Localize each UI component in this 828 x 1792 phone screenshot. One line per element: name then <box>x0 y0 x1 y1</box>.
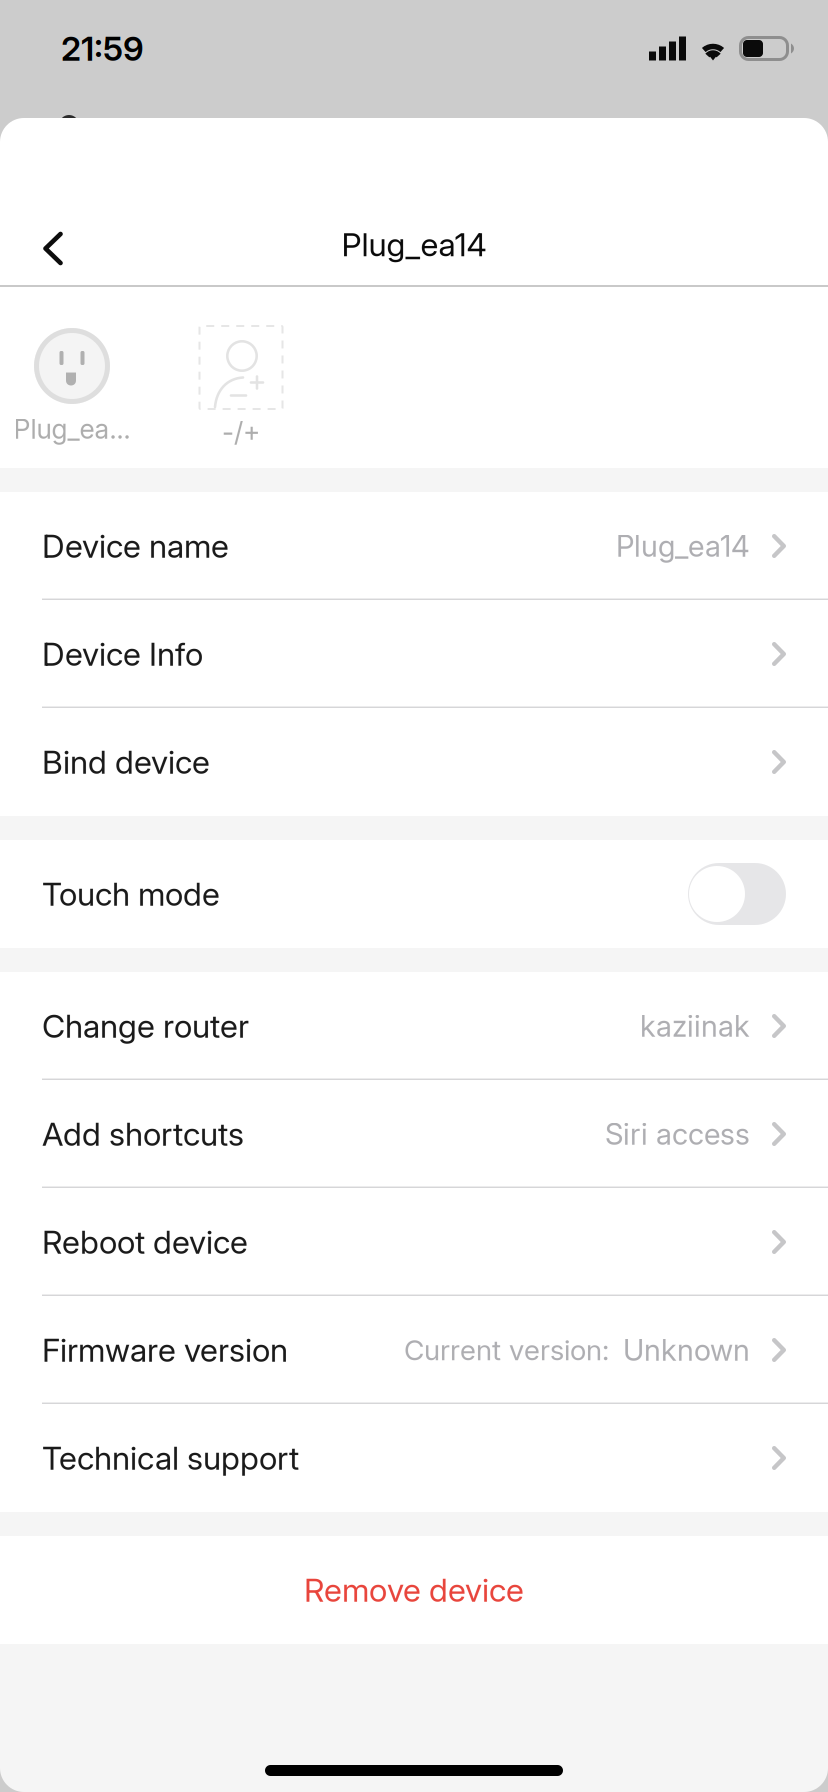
staticText: Firmware version <box>42 1331 288 1369</box>
staticText: Plug_ea... <box>13 413 130 445</box>
staticText: Unknown <box>623 1332 750 1368</box>
staticText: Device Info <box>42 635 203 673</box>
staticText: Plug_ea14 <box>341 225 486 264</box>
staticText: Technical support <box>42 1439 299 1477</box>
button[interactable]: -/+ <box>169 325 313 448</box>
staticText: Bind device <box>42 743 210 781</box>
button[interactable]: Device Info <box>0 600 828 708</box>
staticText: Device name <box>42 527 229 565</box>
button[interactable]: Back <box>5 204 101 285</box>
staticText: Change router <box>42 1007 249 1045</box>
button[interactable]: Touch mode <box>0 840 828 948</box>
staticText: Touch mode <box>42 875 220 913</box>
button[interactable]: Device name <box>0 492 828 600</box>
button[interactable]: Add shortcuts <box>0 1080 828 1188</box>
staticText: Plug_ea14 <box>616 528 750 564</box>
staticText: 21:59 <box>61 28 144 69</box>
staticText: kaziinak <box>640 1008 750 1044</box>
staticText: Reboot device <box>42 1223 248 1261</box>
button[interactable]: Remove device <box>0 1536 828 1644</box>
button[interactable]: Change router <box>0 972 828 1080</box>
staticText: Current version: <box>404 1333 609 1367</box>
staticText: Remove device <box>304 1571 524 1609</box>
staticText: Add shortcuts <box>42 1115 244 1153</box>
staticText: -/+ <box>222 416 260 448</box>
staticText: Siri access <box>605 1116 750 1152</box>
button[interactable]: Firmware version <box>0 1296 828 1404</box>
button[interactable]: Reboot device <box>0 1188 828 1296</box>
button[interactable]: Bind device <box>0 708 828 816</box>
button[interactable]: Technical support <box>0 1404 828 1512</box>
